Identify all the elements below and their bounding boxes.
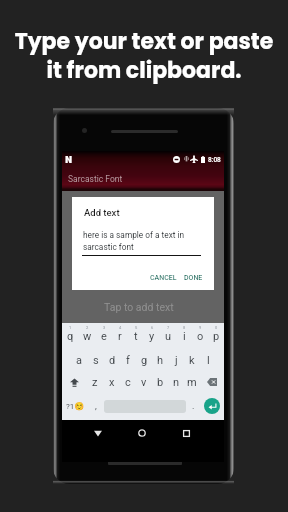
staticText: t xyxy=(134,330,138,343)
button[interactable]: d xyxy=(104,349,120,371)
staticText: 8:08 xyxy=(208,156,221,164)
button[interactable]: Backspace xyxy=(200,371,224,393)
button[interactable]: a xyxy=(70,349,87,371)
button[interactable]: f xyxy=(120,349,136,371)
staticText: DONE xyxy=(184,274,203,282)
button[interactable]: c xyxy=(120,371,136,393)
button[interactable]: s xyxy=(87,349,104,371)
staticText: s xyxy=(93,354,99,367)
staticText: l xyxy=(207,354,210,367)
button[interactable]: , xyxy=(88,395,104,417)
button[interactable]: m xyxy=(184,371,200,393)
button[interactable]: 8 xyxy=(176,324,192,348)
staticText: Type your text or paste it from clipboar… xyxy=(0,26,288,86)
staticText: x xyxy=(109,376,115,389)
staticText: here is a sample of a text in sarcastic … xyxy=(83,230,185,252)
button[interactable]: Shift xyxy=(62,371,86,393)
staticText: n xyxy=(173,376,180,389)
staticText: 9 xyxy=(199,325,202,330)
staticText: Sarcastic Font xyxy=(68,174,123,184)
staticText: w xyxy=(83,330,92,343)
staticText: z xyxy=(92,376,98,389)
staticText: c xyxy=(125,376,131,389)
button[interactable]: Recents xyxy=(175,423,198,443)
button[interactable]: 4 xyxy=(112,324,128,348)
button[interactable]: l xyxy=(200,349,216,371)
staticText: 6 xyxy=(151,325,154,330)
button[interactable]: 6 xyxy=(144,324,160,348)
staticText: p xyxy=(213,330,220,343)
staticText: f xyxy=(126,354,130,367)
button[interactable]: h xyxy=(152,349,168,371)
staticText: 5 xyxy=(135,325,138,330)
staticText: 1 xyxy=(69,325,72,330)
staticText: 3 xyxy=(103,325,106,330)
staticText: 4 xyxy=(119,325,122,330)
staticText: . xyxy=(192,401,195,412)
button[interactable]: 9 xyxy=(192,324,208,348)
staticText: ?1☺ xyxy=(66,402,85,411)
button[interactable]: x xyxy=(103,371,120,393)
button[interactable]: . xyxy=(186,395,200,417)
staticText: d xyxy=(109,354,116,367)
button[interactable]: CANCEL xyxy=(146,271,181,285)
button[interactable]: j xyxy=(168,349,184,371)
staticText: y xyxy=(149,330,155,343)
button[interactable]: b xyxy=(152,371,168,393)
staticText: b xyxy=(157,376,164,389)
button[interactable]: 7 xyxy=(160,324,176,348)
staticText: CANCEL xyxy=(150,274,177,282)
staticText: r xyxy=(118,330,122,343)
staticText: h xyxy=(157,354,164,367)
button[interactable]: DONE xyxy=(180,271,207,285)
button[interactable]: 2 xyxy=(79,324,96,348)
staticText: o xyxy=(197,330,204,343)
button[interactable]: n xyxy=(168,371,184,393)
staticText: e xyxy=(101,330,107,343)
staticText: Add text xyxy=(84,207,120,218)
staticText: g xyxy=(141,354,148,367)
button[interactable]: Home xyxy=(130,423,153,443)
staticText: k xyxy=(189,354,195,367)
button[interactable]: g xyxy=(136,349,152,371)
staticText: j xyxy=(175,354,178,367)
staticText: 7 xyxy=(167,325,170,330)
staticText: q xyxy=(67,330,74,343)
button[interactable]: ?1☺ xyxy=(62,395,88,417)
button[interactable]: Enter xyxy=(204,398,220,414)
button[interactable]: 5 xyxy=(128,324,144,348)
button[interactable]: 1 xyxy=(62,324,79,348)
button[interactable]: z xyxy=(86,371,103,393)
staticText: v xyxy=(141,376,147,389)
button[interactable]: 3 xyxy=(96,324,112,348)
staticText: 8 xyxy=(183,325,186,330)
button[interactable]: 0 xyxy=(208,324,224,348)
staticText: 0 xyxy=(215,325,218,330)
staticText: u xyxy=(165,330,172,343)
staticText: 2 xyxy=(86,325,89,330)
staticText: i xyxy=(183,330,186,343)
button[interactable]: k xyxy=(184,349,200,371)
button[interactable]: Back xyxy=(86,423,109,443)
staticText: m xyxy=(187,376,197,389)
button[interactable]: v xyxy=(136,371,152,393)
staticText: a xyxy=(76,354,82,367)
staticText: , xyxy=(95,401,97,412)
staticText: Tap to add text xyxy=(104,301,174,313)
